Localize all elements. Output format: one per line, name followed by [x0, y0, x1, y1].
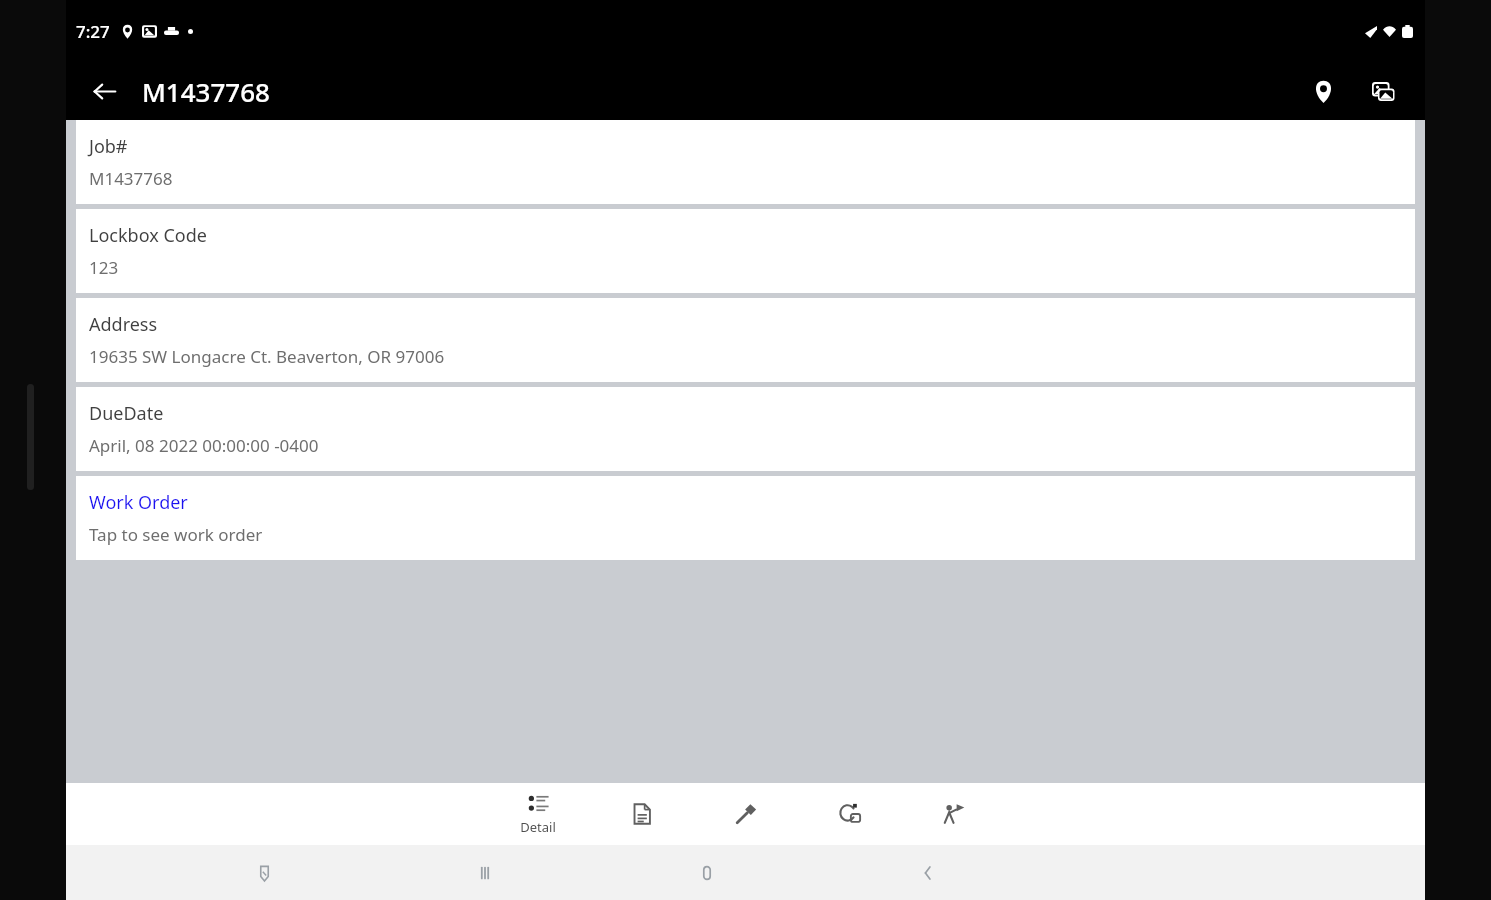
staticText: 7:27: [76, 20, 110, 43]
staticText: M1437768: [89, 167, 173, 190]
button[interactable]: Documents: [590, 783, 694, 845]
staticText: 123: [89, 256, 119, 279]
button[interactable]: Job#: [76, 120, 1415, 204]
button[interactable]: Status: [798, 783, 902, 845]
staticText: Detail: [520, 818, 556, 836]
button[interactable]: Tools: [694, 783, 798, 845]
button[interactable]: Home: [683, 849, 731, 897]
staticText: April, 08 2022 00:00:00 -0400: [89, 434, 319, 457]
button[interactable]: Work Order: [76, 476, 1415, 560]
staticText: Address: [89, 312, 158, 337]
button[interactable]: Assign: [902, 783, 1006, 845]
staticText: 19635 SW Longacre Ct. Beaverton, OR 9700…: [89, 345, 445, 368]
staticText: Job#: [89, 134, 128, 159]
staticText: Work Order: [89, 490, 188, 515]
button[interactable]: Map location: [1297, 65, 1349, 117]
button[interactable]: Detail: [486, 783, 590, 845]
button[interactable]: Hide keyboard: [240, 849, 288, 897]
staticText: Tap to see work order: [89, 523, 263, 546]
staticText: Lockbox Code: [89, 223, 207, 248]
button[interactable]: Back: [80, 67, 128, 115]
button[interactable]: Back: [904, 849, 952, 897]
button[interactable]: Recent apps: [461, 849, 509, 897]
button[interactable]: Address: [76, 298, 1415, 382]
staticText: M1437768: [142, 74, 270, 109]
button[interactable]: Photos: [1357, 65, 1409, 117]
button[interactable]: DueDate: [76, 387, 1415, 471]
button[interactable]: Lockbox Code: [76, 209, 1415, 293]
staticText: DueDate: [89, 401, 164, 426]
